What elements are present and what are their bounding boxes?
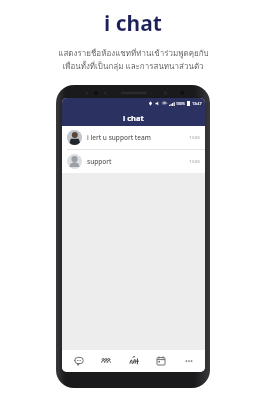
button[interactable]: More [178,350,200,372]
button[interactable]: Chats [68,350,90,372]
staticText: i lert u support team [87,133,189,142]
button[interactable]: Groups [95,350,117,372]
staticText: 13:03 [189,135,200,141]
staticText: i chat [123,113,144,123]
staticText: 13:03 [189,159,200,165]
staticText: 13:47 [192,101,202,106]
staticText: i chat [104,9,162,38]
button[interactable]: i lert u support team [62,126,205,149]
staticText: แสดงรายชื่อห้องแชทที่ท่านเข้าร่วมพูดคุยก… [58,47,209,60]
staticText: เพื่อนทั้งที่เป็นกลุ่ม และการสนทนาส่วนตั… [62,60,204,73]
button[interactable]: Calendar [150,350,172,372]
button[interactable]: Sign [123,350,145,372]
button[interactable]: support [62,150,205,173]
staticText: support [87,157,189,166]
staticText: 100% [176,101,185,106]
